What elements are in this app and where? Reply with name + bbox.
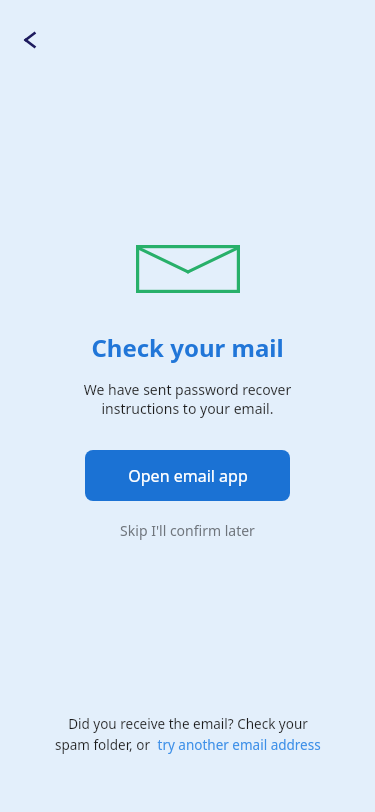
staticText: Skip I'll confirm later (120, 521, 255, 540)
staticText: Check your mail (91, 331, 284, 364)
staticText: Open email app (128, 465, 248, 487)
button[interactable]: Open email app (85, 450, 290, 501)
button[interactable]: Skip I'll confirm later (104, 515, 271, 546)
staticText: try another email address (154, 736, 321, 754)
button[interactable]: Back (8, 18, 52, 62)
button[interactable]: try another email address (154, 736, 321, 754)
staticText: We have sent password recover instructio… (40, 380, 335, 418)
staticText: Did you receive the email? Check your (68, 715, 308, 733)
staticText: spam folder, or (55, 736, 154, 754)
